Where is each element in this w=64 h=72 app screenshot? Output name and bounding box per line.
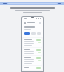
button[interactable]: [31, 32, 36, 35]
button[interactable]: [23, 66, 42, 70]
button[interactable]: [0, 2, 64, 5]
button[interactable]: Menu: [24, 22, 26, 24]
button[interactable]: [24, 32, 30, 35]
button[interactable]: [37, 32, 41, 35]
button[interactable]: [23, 48, 42, 55]
button[interactable]: [23, 38, 42, 47]
button[interactable]: [23, 56, 42, 65]
